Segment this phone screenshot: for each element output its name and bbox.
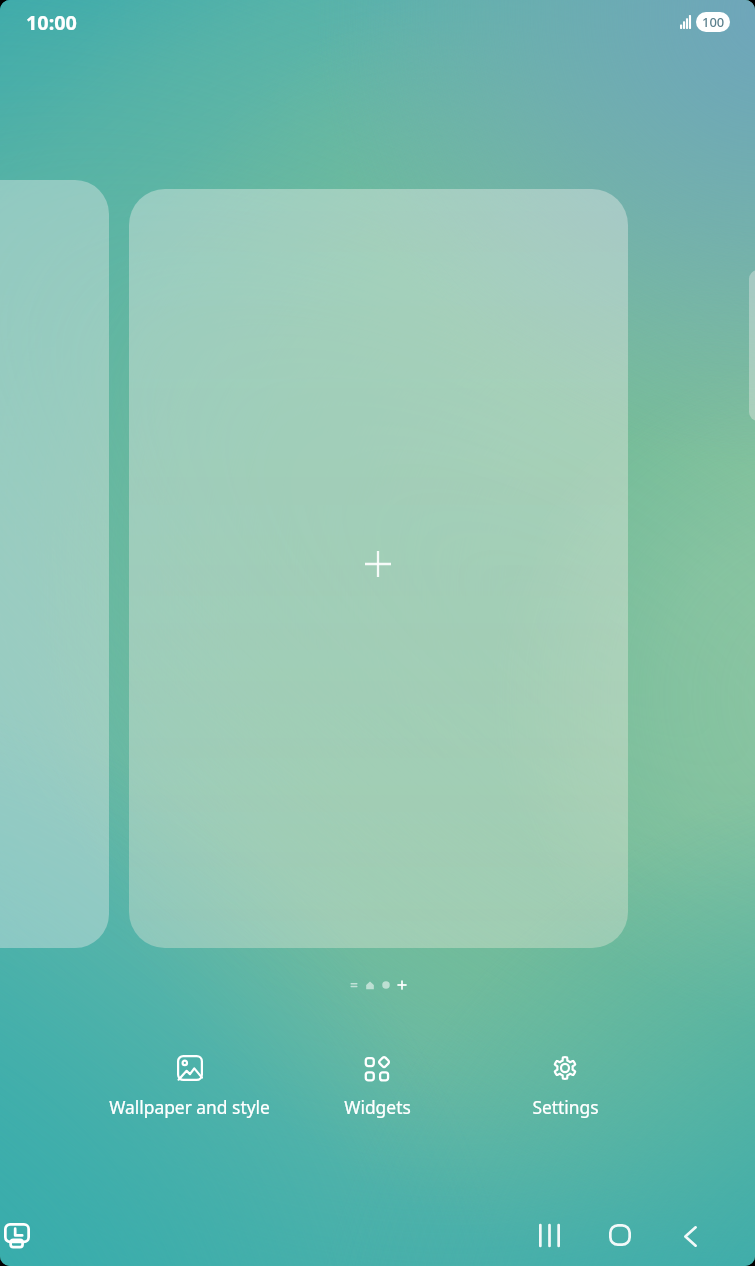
staticText: Settings (532, 1095, 599, 1119)
button[interactable]: Home (592, 1207, 648, 1263)
staticText: 100 (702, 13, 725, 31)
button[interactable]: Wallpaper and style (96, 1049, 283, 1125)
button[interactable]: Widgets (283, 1049, 471, 1125)
button[interactable]: Back (662, 1208, 718, 1264)
button[interactable] (129, 189, 628, 948)
button[interactable]: Settings (471, 1049, 659, 1125)
button[interactable]: Recent apps (521, 1207, 577, 1263)
staticText: Widgets (344, 1095, 411, 1119)
button[interactable] (0, 180, 109, 948)
button[interactable]: Keep screen on (0, 1212, 41, 1260)
staticText: Wallpaper and style (109, 1095, 270, 1119)
staticText: 10:00 (26, 9, 77, 36)
